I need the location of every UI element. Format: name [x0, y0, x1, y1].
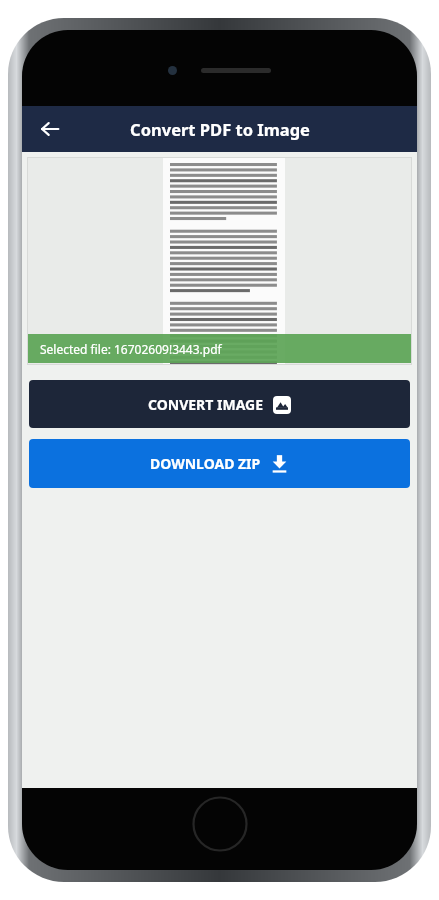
button[interactable]: DOWNLOAD ZIP: [29, 439, 410, 488]
button[interactable]: CONVERT IMAGE: [29, 380, 410, 428]
staticText: Convert PDF to Image: [130, 118, 310, 140]
staticText: DOWNLOAD ZIP: [150, 454, 261, 473]
staticText: Selected file: 16702609!3443.pdf: [40, 341, 222, 357]
button[interactable]: Back: [30, 109, 70, 149]
staticText: CONVERT IMAGE: [148, 395, 264, 414]
